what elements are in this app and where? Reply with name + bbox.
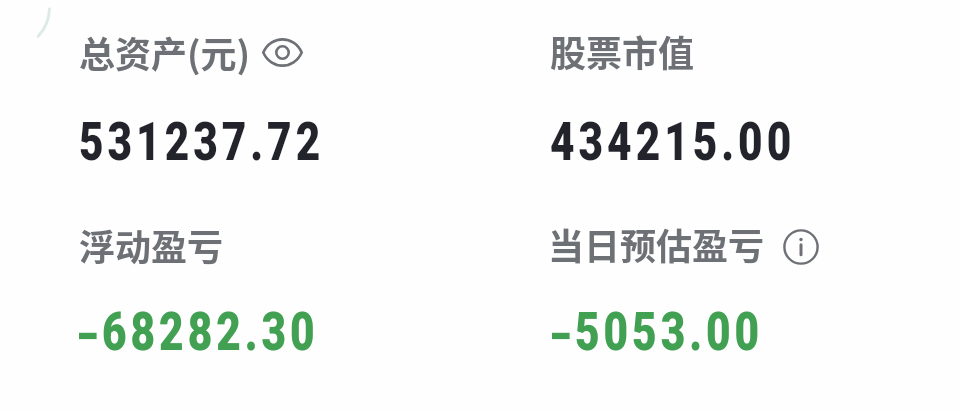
staticText: 68282.30 xyxy=(102,300,319,364)
button[interactable]: 434215.00 xyxy=(550,110,864,174)
button[interactable]: 浮动盈亏 xyxy=(79,219,224,271)
button[interactable]: 531237.72 xyxy=(79,110,393,174)
staticText: 当日预估盈亏 xyxy=(548,218,765,270)
button[interactable]: 当日预估盈亏 xyxy=(548,218,819,270)
staticText: 434215.00 xyxy=(550,110,795,174)
button[interactable]: 股票市值 xyxy=(550,25,695,77)
staticText: 股票市值 xyxy=(550,25,695,77)
button[interactable]: 5053.00 xyxy=(552,300,816,364)
button[interactable]: 68282.30 xyxy=(79,300,380,364)
staticText: 总资产(元) xyxy=(79,26,251,78)
staticText: 浮动盈亏 xyxy=(79,219,224,271)
button[interactable]: Toggle balance visibility xyxy=(262,31,303,68)
button[interactable]: About estimated daily profit and loss xyxy=(783,229,819,265)
button[interactable]: 总资产(元) xyxy=(79,26,303,78)
staticText: 5053.00 xyxy=(575,300,763,364)
staticText: 531237.72 xyxy=(79,110,324,174)
